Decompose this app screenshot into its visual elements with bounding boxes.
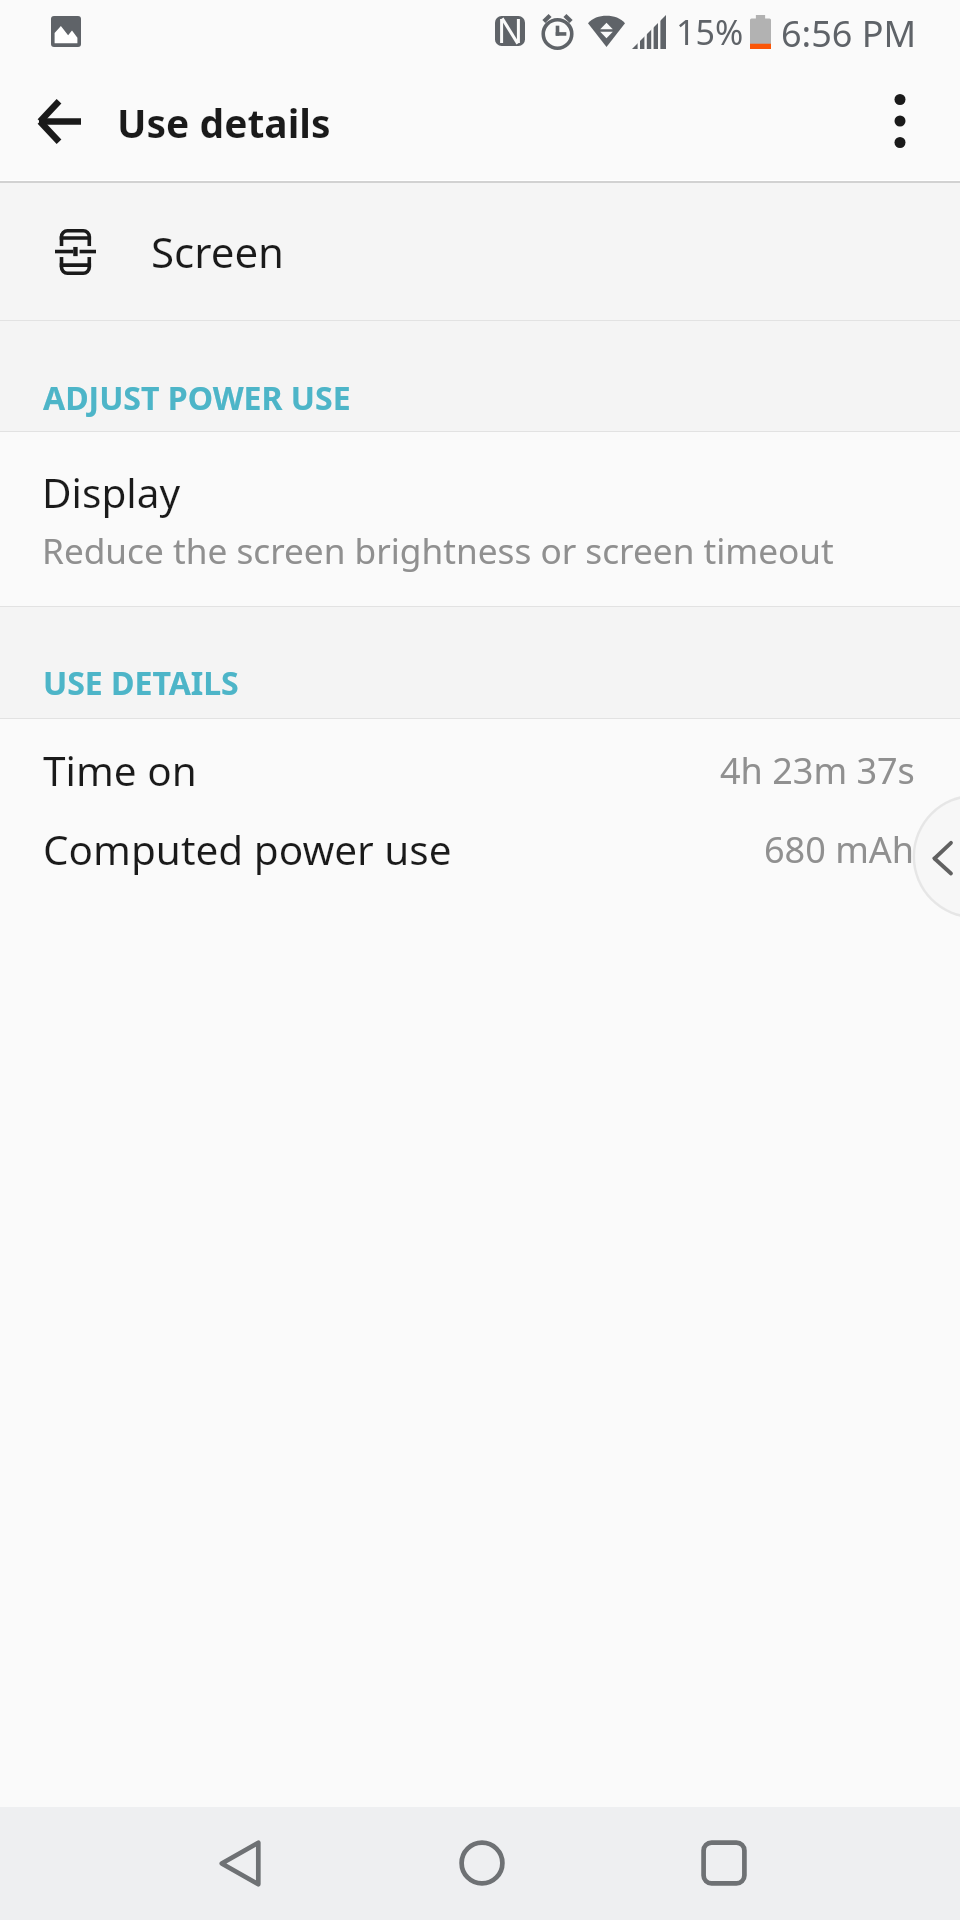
button[interactable]: Recents (669, 1808, 779, 1918)
staticText: Screen (151, 223, 285, 280)
staticText: USE DETAILS (43, 661, 239, 705)
staticText: Use details (117, 96, 331, 149)
staticText: 15% (676, 9, 744, 55)
staticText: Computed power use (43, 822, 452, 877)
staticText: Time on (43, 743, 197, 798)
button[interactable]: Back (185, 1808, 295, 1918)
button[interactable]: Back (15, 77, 103, 165)
button[interactable]: Home (427, 1808, 537, 1918)
staticText: Reduce the screen brightness or screen t… (42, 526, 834, 574)
staticText: 6:56 PM (781, 9, 917, 58)
staticText: 4h 23m 37s (720, 746, 915, 795)
button[interactable]: More options (856, 77, 944, 165)
staticText: ADJUST POWER USE (43, 376, 351, 420)
staticText: 680 mAh (764, 825, 915, 874)
staticText: Display (42, 465, 181, 520)
button[interactable]: Display (0, 432, 960, 606)
button[interactable]: Screen (0, 183, 960, 320)
